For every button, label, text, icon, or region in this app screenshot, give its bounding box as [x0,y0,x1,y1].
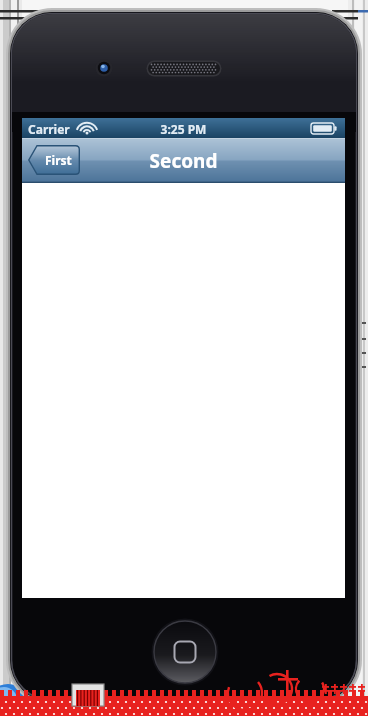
button[interactable]: First, back [28,145,80,175]
staticText: 3:25 PM [22,121,345,137]
staticText: First [45,152,72,168]
staticText: Carrier [28,121,70,137]
staticText: Second [22,148,345,174]
